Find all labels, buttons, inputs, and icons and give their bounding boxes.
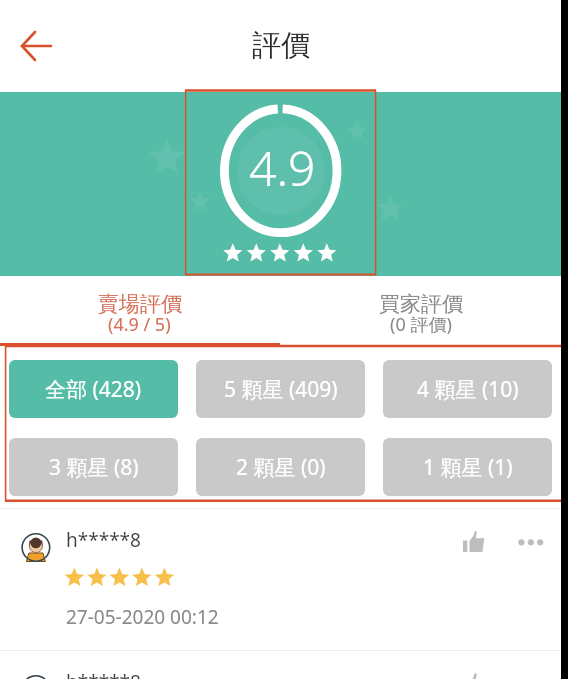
button[interactable]: 5 顆星 (409) — [196, 360, 365, 418]
button[interactable]: 全部 (428) — [9, 360, 178, 418]
button[interactable]: h*****8 — [0, 509, 568, 649]
button[interactable]: 賣場評價 — [0, 276, 281, 348]
button[interactable]: Back — [12, 22, 60, 70]
staticText: 5 顆星 (409) — [224, 375, 338, 404]
button[interactable]: h*****8 — [0, 651, 568, 679]
staticText: 27-05-2020 00:12 — [66, 604, 219, 630]
button[interactable]: 3 顆星 (8) — [9, 438, 178, 496]
staticText: (4.9 / 5) — [108, 312, 171, 337]
button[interactable]: 4 顆星 (10) — [383, 360, 552, 418]
staticText: 全部 (428) — [45, 375, 142, 404]
staticText: 4 顆星 (10) — [417, 375, 519, 404]
button[interactable]: 買家評價 — [281, 276, 561, 348]
button[interactable]: 2 顆星 (0) — [196, 438, 365, 496]
staticText: 賣場評價 — [98, 291, 182, 317]
staticText: 1 顆星 (1) — [423, 453, 513, 482]
staticText: 4.9 — [249, 135, 316, 200]
staticText: 3 顆星 (8) — [49, 453, 139, 482]
staticText: 評價 — [252, 27, 310, 64]
staticText: 買家評價 — [379, 291, 463, 317]
staticText: h*****8 — [66, 669, 141, 679]
staticText: 2 顆星 (0) — [236, 453, 326, 482]
staticText: (0 評價) — [390, 312, 452, 337]
button[interactable]: 1 顆星 (1) — [383, 438, 552, 496]
staticText: h*****8 — [66, 527, 141, 553]
